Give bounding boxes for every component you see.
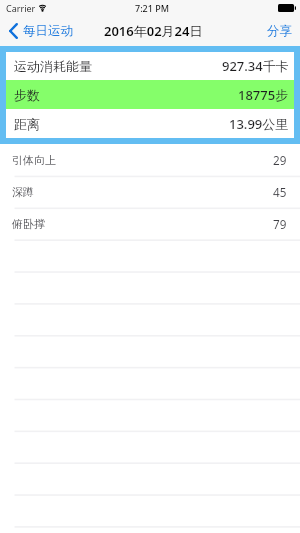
staticText: 俯卧撑: [12, 217, 45, 231]
staticText: 2016年02月24日: [104, 22, 203, 40]
staticText: 13.99公里: [229, 115, 289, 133]
button[interactable]: 俯卧撑: [0, 208, 300, 240]
staticText: 29: [273, 152, 287, 168]
staticText: Carrier: [6, 2, 36, 14]
button[interactable]: Back: [0, 21, 79, 41]
staticText: 每日运动: [23, 23, 73, 39]
staticText: 45: [273, 184, 287, 200]
staticText: 18775步: [238, 86, 289, 104]
staticText: 运动消耗能量: [14, 58, 92, 74]
staticText: 距离: [14, 116, 40, 132]
staticText: 927.34千卡: [222, 57, 289, 75]
staticText: 深蹲: [12, 185, 34, 199]
staticText: 步数: [14, 87, 40, 103]
button[interactable]: 步数: [6, 80, 294, 109]
staticText: 引体向上: [12, 153, 56, 167]
button[interactable]: 距离: [6, 109, 294, 138]
staticText: 7:21 PM: [135, 2, 169, 14]
button[interactable]: 引体向上: [0, 144, 300, 176]
button[interactable]: 分享: [259, 21, 300, 41]
button[interactable]: 运动消耗能量: [6, 52, 294, 80]
button[interactable]: 深蹲: [0, 176, 300, 208]
staticText: 分享: [267, 23, 292, 39]
staticText: 79: [273, 216, 287, 232]
